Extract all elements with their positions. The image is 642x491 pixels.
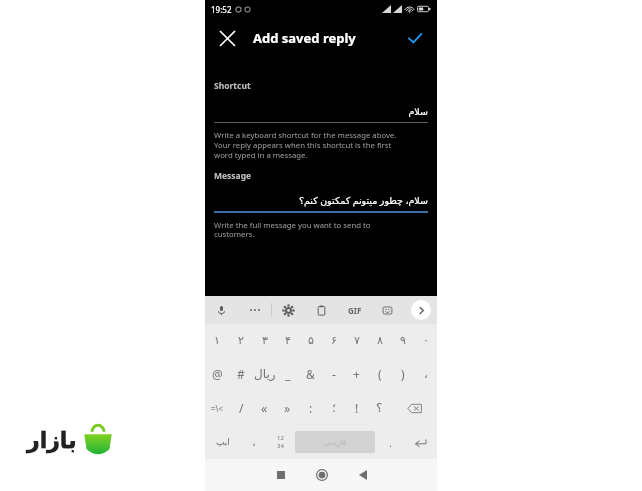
staticText: Write a keyboard shortcut for the messag…: [214, 130, 397, 160]
button[interactable]: ،: [240, 425, 267, 459]
staticText: سلام، چطور میتونم کمکتون کنم؟: [214, 194, 428, 207]
staticText: ۵: [308, 334, 314, 347]
button[interactable]: ۴: [276, 324, 299, 357]
staticText: 34: [277, 442, 284, 450]
staticText: 19:52: [211, 4, 232, 15]
button[interactable]: Clipboard: [305, 296, 338, 324]
button[interactable]: »: [276, 391, 299, 425]
button[interactable]: Numbers: [267, 425, 293, 459]
staticText: ۸: [377, 334, 383, 347]
button[interactable]: Bazaar: [8, 412, 132, 469]
staticText: ؛: [332, 401, 336, 415]
staticText: ۳: [262, 334, 268, 347]
button[interactable]: _: [276, 357, 299, 391]
button[interactable]: ): [391, 357, 414, 391]
button[interactable]: Save: [401, 24, 429, 52]
staticText: ریال: [254, 367, 276, 381]
button[interactable]: #: [229, 357, 253, 391]
button[interactable]: Back: [342, 459, 383, 491]
button[interactable]: ریال: [253, 357, 276, 391]
button[interactable]: GIF: [338, 296, 371, 324]
button[interactable]: ۱: [205, 324, 229, 357]
staticText: Shortcut: [214, 80, 251, 92]
staticText: ،: [252, 436, 256, 449]
staticText: _: [285, 366, 291, 382]
button[interactable]: /: [229, 391, 253, 425]
staticText: ۱: [214, 334, 220, 347]
button[interactable]: :: [299, 391, 322, 425]
staticText: ۴: [285, 334, 291, 347]
staticText: ۲: [238, 334, 244, 347]
button[interactable]: Switch to letters: [205, 425, 240, 459]
staticText: @: [212, 366, 223, 382]
staticText: ۷: [354, 334, 360, 347]
button[interactable]: Enter: [403, 425, 437, 459]
staticText: ۰: [423, 334, 429, 347]
staticText: ،: [424, 367, 428, 381]
button[interactable]: ۹: [391, 324, 414, 357]
button[interactable]: Home: [301, 459, 342, 491]
staticText: »: [284, 400, 291, 416]
button[interactable]: More options: [238, 296, 271, 324]
staticText: بازار: [27, 428, 77, 454]
staticText: ۶: [331, 334, 337, 347]
staticText: +: [353, 366, 360, 382]
staticText: (: [378, 366, 382, 382]
button[interactable]: ؟: [368, 391, 391, 425]
button[interactable]: «: [253, 391, 276, 425]
button[interactable]: ۷: [345, 324, 368, 357]
staticText: &: [306, 366, 315, 382]
button[interactable]: Backspace: [391, 391, 437, 425]
button[interactable]: Expand toolbar: [404, 296, 437, 324]
button[interactable]: ۲: [229, 324, 253, 357]
button[interactable]: &: [299, 357, 322, 391]
button[interactable]: !: [345, 391, 368, 425]
staticText: .: [389, 435, 392, 450]
staticText: ؟: [376, 401, 383, 415]
staticText: :: [309, 400, 313, 416]
button[interactable]: ؛: [322, 391, 345, 425]
staticText: !: [355, 400, 359, 416]
button[interactable]: ۰: [414, 324, 437, 357]
button[interactable]: Keyboard settings: [272, 296, 305, 324]
staticText: Write the full message you want to send …: [214, 220, 371, 240]
button[interactable]: Voice input: [205, 296, 238, 324]
staticText: -: [332, 366, 336, 382]
button[interactable]: Recent apps: [260, 459, 301, 491]
button[interactable]: (: [368, 357, 391, 391]
button[interactable]: ۵: [299, 324, 322, 357]
button[interactable]: ،: [414, 357, 437, 391]
staticText: =\<: [211, 403, 224, 414]
staticText: «: [261, 400, 268, 416]
button[interactable]: ۳: [253, 324, 276, 357]
staticText: ): [401, 366, 405, 382]
staticText: فارسی: [324, 438, 347, 447]
staticText: #: [237, 366, 245, 382]
button[interactable]: -: [322, 357, 345, 391]
staticText: Message: [214, 170, 252, 182]
button[interactable]: Stickers: [371, 296, 404, 324]
staticText: Add saved reply: [253, 29, 356, 47]
button[interactable]: +: [345, 357, 368, 391]
button[interactable]: ۸: [368, 324, 391, 357]
staticText: سلام: [214, 106, 428, 117]
staticText: GIF: [348, 305, 362, 316]
button[interactable]: Close: [213, 24, 241, 52]
staticText: 12: [277, 434, 284, 442]
button[interactable]: ۶: [322, 324, 345, 357]
staticText: /: [239, 400, 244, 416]
staticText: ابپ: [216, 437, 230, 447]
staticText: ۹: [400, 334, 406, 347]
button[interactable]: Symbols: [205, 391, 229, 425]
button[interactable]: .: [377, 425, 403, 459]
button[interactable]: @: [205, 357, 229, 391]
